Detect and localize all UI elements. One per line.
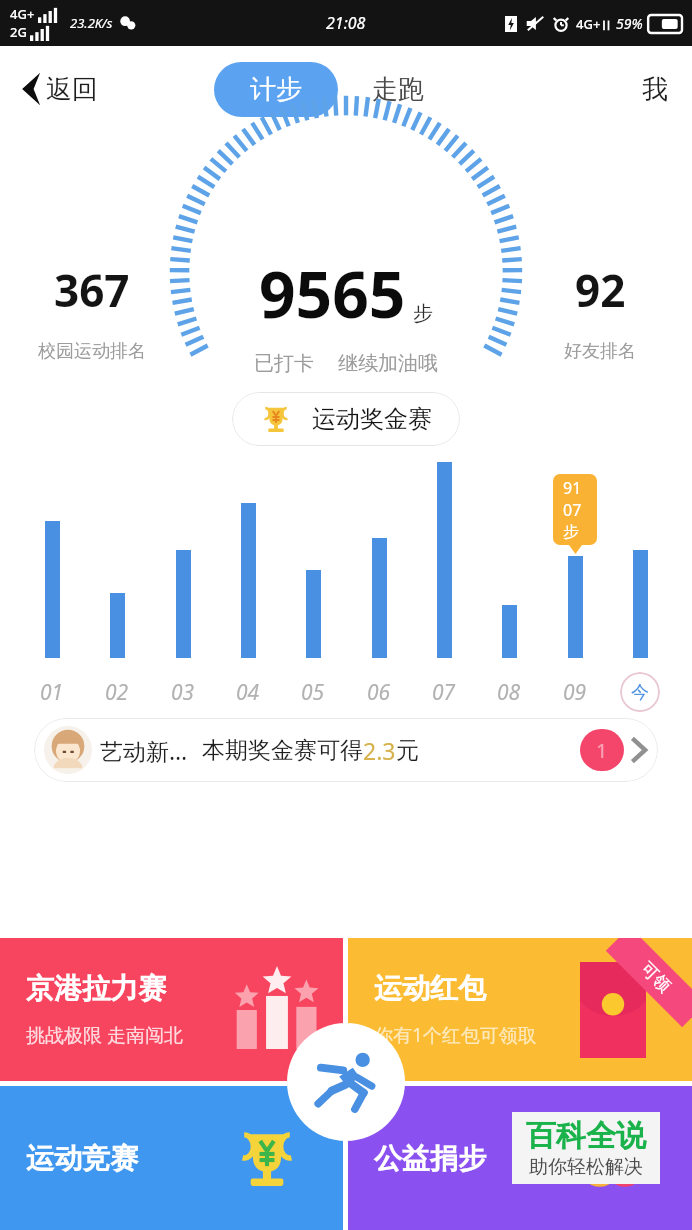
- other: 更多: [628, 733, 650, 767]
- staticText: 步: [413, 301, 433, 326]
- staticText: 本期奖金赛可得: [202, 736, 363, 765]
- staticText: 4G+: [10, 5, 35, 23]
- button[interactable]: 92: [514, 260, 686, 363]
- button[interactable]: 367: [6, 260, 178, 363]
- staticText: 百科全说: [526, 1117, 646, 1155]
- button[interactable]: 今: [618, 462, 662, 712]
- staticText: 01: [40, 678, 64, 707]
- button[interactable]: 运动奖金赛: [232, 392, 460, 446]
- staticText: 公益捐步: [374, 1141, 486, 1176]
- button[interactable]: 计步: [214, 62, 338, 117]
- staticText: 2.3: [363, 735, 396, 766]
- staticText: 返回: [46, 73, 98, 106]
- button[interactable]: 07: [422, 462, 466, 712]
- button[interactable]: 02: [95, 462, 139, 712]
- staticText: 元: [396, 736, 419, 765]
- staticText: 4G+: [576, 15, 601, 33]
- button[interactable]: 走跑: [358, 62, 438, 117]
- staticText: 02: [105, 678, 129, 707]
- staticText: 运动红包: [374, 971, 486, 1006]
- staticText: 继续加油哦: [338, 351, 438, 376]
- button[interactable]: 08: [487, 462, 531, 712]
- staticText: 艺动新…: [100, 735, 188, 766]
- staticText: 可领: [636, 958, 675, 997]
- staticText: 1: [596, 737, 608, 764]
- staticText: 9107步: [563, 477, 587, 542]
- button[interactable]: 01: [30, 462, 74, 712]
- staticText: 09: [563, 678, 587, 707]
- staticText: 我: [642, 73, 668, 106]
- staticText: 07: [432, 678, 456, 707]
- staticText: 2G: [10, 23, 27, 41]
- button[interactable]: 运动竞赛: [0, 1086, 343, 1230]
- button[interactable]: 京港拉力赛: [0, 938, 343, 1081]
- staticText: 挑战极限 走南闯北: [26, 1022, 183, 1048]
- button[interactable]: 我: [634, 65, 676, 114]
- button[interactable]: 运动红包: [348, 938, 692, 1081]
- staticText: 运动竞赛: [26, 1141, 138, 1176]
- staticText: 今: [631, 681, 649, 704]
- button[interactable]: 04: [226, 462, 270, 712]
- staticText: 好友排名: [564, 340, 636, 363]
- staticText: 06: [367, 678, 391, 707]
- staticText: 04: [236, 678, 260, 707]
- staticText: 21:08: [326, 12, 366, 34]
- staticText: 9565: [259, 250, 406, 337]
- staticText: 03: [171, 678, 195, 707]
- staticText: 08: [497, 678, 521, 707]
- staticText: 走跑: [372, 73, 424, 106]
- staticText: 23.2K/s: [70, 14, 113, 32]
- button[interactable]: 艺动新…: [34, 718, 658, 782]
- staticText: 京港拉力赛: [26, 971, 166, 1006]
- button[interactable]: 返回: [12, 65, 104, 113]
- button[interactable]: 9107步: [553, 462, 597, 712]
- staticText: 运动奖金赛: [312, 404, 432, 434]
- staticText: 校园运动排名: [38, 340, 146, 363]
- staticText: 助你轻松解决: [529, 1155, 643, 1179]
- staticText: 367: [54, 260, 130, 320]
- staticText: 92: [575, 260, 626, 320]
- staticText: 已打卡: [254, 351, 314, 376]
- button[interactable]: 03: [161, 462, 205, 712]
- staticText: 05: [301, 678, 325, 707]
- staticText: 计步: [250, 73, 302, 106]
- staticText: 59%: [616, 14, 643, 33]
- button[interactable]: 开始跑步: [287, 1023, 405, 1141]
- staticText: 你有1个红包可领取: [374, 1022, 537, 1048]
- button[interactable]: 06: [357, 462, 401, 712]
- button[interactable]: 公益捐步: [348, 1086, 692, 1230]
- button[interactable]: 05: [291, 462, 335, 712]
